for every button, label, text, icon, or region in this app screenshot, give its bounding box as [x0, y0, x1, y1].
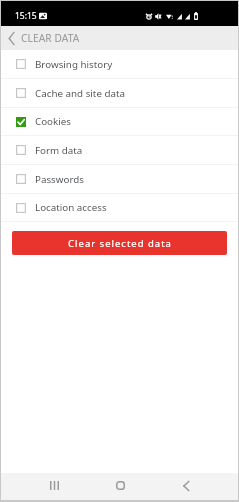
button[interactable]: Clear selected data [12, 231, 227, 255]
staticText: Form data [35, 144, 83, 157]
button[interactable]: Recent apps [21, 473, 87, 500]
staticText: Location access [35, 201, 107, 214]
button[interactable]: Location access [1, 194, 238, 221]
staticText: CLEAR DATA [21, 31, 80, 45]
button[interactable]: Form data [1, 136, 238, 164]
staticText: Browsing history [35, 58, 113, 71]
button[interactable]: Home [87, 473, 153, 500]
button[interactable]: Passwords [1, 165, 238, 193]
staticText: Cache and site data [35, 87, 126, 100]
staticText: Clear selected data [68, 237, 172, 250]
button[interactable]: Back [153, 473, 219, 500]
button[interactable]: Browsing history [1, 50, 238, 78]
staticText: Passwords [35, 173, 85, 186]
staticText: 15:15 [15, 10, 37, 22]
button[interactable]: Cache and site data [1, 79, 238, 107]
button[interactable]: Cookies [1, 108, 238, 135]
staticText: Cookies [35, 115, 72, 128]
button[interactable]: Navigate up [1, 26, 21, 50]
